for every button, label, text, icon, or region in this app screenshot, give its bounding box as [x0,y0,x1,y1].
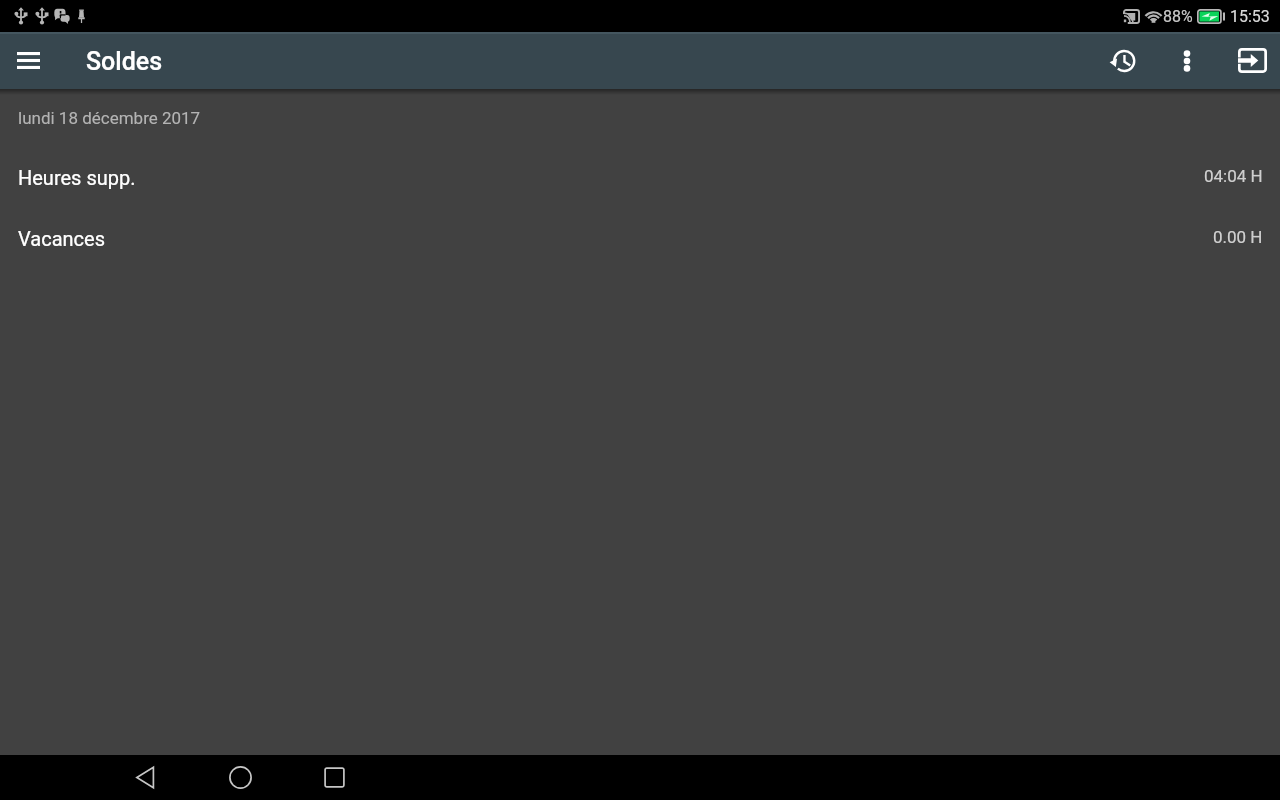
button[interactable]: Log in [1224,32,1280,89]
staticText: 15:53 [1230,7,1270,26]
staticText: Soldes [86,47,163,76]
staticText: 88% [1163,7,1193,26]
staticText: lundi 18 décembre 2017 [18,108,201,128]
button[interactable]: Back [99,755,193,800]
staticText: 04:04 H [1204,166,1263,186]
staticText: Vacances [18,227,105,250]
button[interactable]: More options [1159,32,1215,89]
button[interactable]: Heures supp. [0,147,1280,208]
button[interactable]: Recent apps [287,755,381,800]
button[interactable]: History [1094,32,1150,89]
staticText: 0.00 H [1213,227,1263,247]
button[interactable]: Open navigation menu [0,34,57,87]
button[interactable]: Vacances [0,208,1280,269]
button[interactable]: Home [193,755,287,800]
staticText: Heures supp. [18,166,136,189]
